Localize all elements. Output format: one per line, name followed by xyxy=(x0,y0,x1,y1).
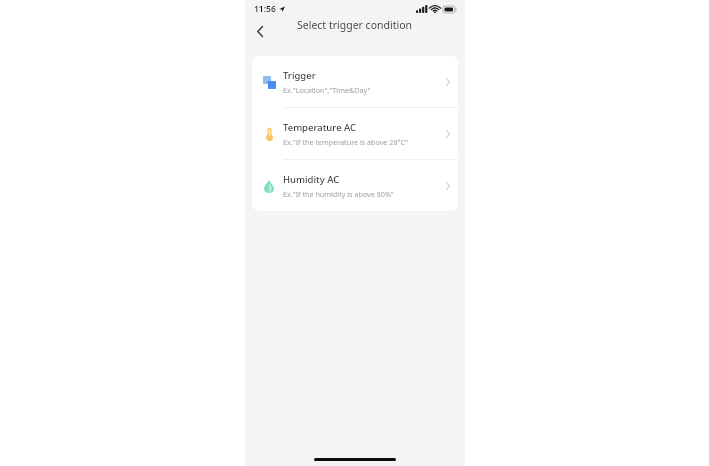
staticText: Temperature AC xyxy=(283,121,357,134)
staticText: Humidity AC xyxy=(283,173,340,186)
staticText: Ex."If the humidity is above 80%" xyxy=(283,189,394,199)
staticText: Ex."Location","Time&Day" xyxy=(283,85,371,95)
button[interactable]: Temperature AC xyxy=(252,108,458,159)
staticText: Ex."If the temperature is above 28°C" xyxy=(283,137,409,147)
button[interactable]: Back xyxy=(249,20,271,42)
button[interactable]: Trigger xyxy=(252,56,458,107)
button[interactable]: Humidity AC xyxy=(252,160,458,211)
staticText: Trigger xyxy=(283,69,316,82)
staticText: Select trigger condition xyxy=(297,18,413,32)
staticText: 11:56 xyxy=(254,3,276,15)
